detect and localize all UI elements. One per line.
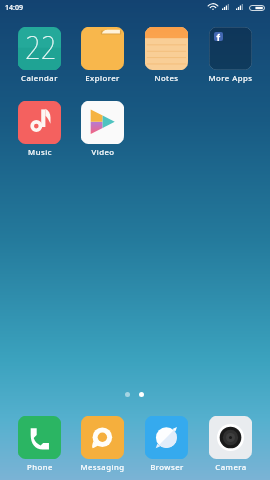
button[interactable]: Page 2, current bbox=[139, 392, 144, 397]
staticText: Messaging bbox=[80, 462, 125, 473]
other: Signal SIM 2 bbox=[236, 4, 243, 10]
button[interactable]: 22 bbox=[8, 27, 71, 84]
button[interactable]: Video bbox=[71, 101, 134, 158]
button[interactable]: Messaging bbox=[71, 416, 134, 473]
staticText: Music bbox=[28, 147, 52, 158]
other: Wi-Fi bbox=[209, 3, 217, 10]
button[interactable]: Phone bbox=[8, 416, 71, 473]
button[interactable]: Camera bbox=[199, 416, 262, 473]
other: Signal SIM 1 bbox=[222, 4, 229, 10]
staticText: Browser bbox=[150, 462, 184, 473]
button[interactable]: Page 1 bbox=[125, 392, 130, 397]
button[interactable]: Notes bbox=[135, 27, 198, 84]
button[interactable]: Music bbox=[8, 101, 71, 158]
button[interactable]: Browser bbox=[135, 416, 198, 473]
staticText: More Apps bbox=[208, 73, 253, 84]
staticText: Video bbox=[91, 147, 115, 158]
staticText: 14:09 bbox=[5, 3, 23, 13]
staticText: 22 bbox=[25, 27, 57, 68]
staticText: Calendar bbox=[21, 73, 58, 84]
staticText: Notes bbox=[154, 73, 179, 84]
staticText: Explorer bbox=[85, 73, 120, 84]
other: Battery bbox=[249, 5, 265, 11]
button[interactable]: Explorer bbox=[71, 27, 134, 84]
staticText: Phone bbox=[27, 462, 53, 473]
staticText: Camera bbox=[215, 462, 247, 473]
button[interactable]: More Apps bbox=[199, 27, 262, 84]
